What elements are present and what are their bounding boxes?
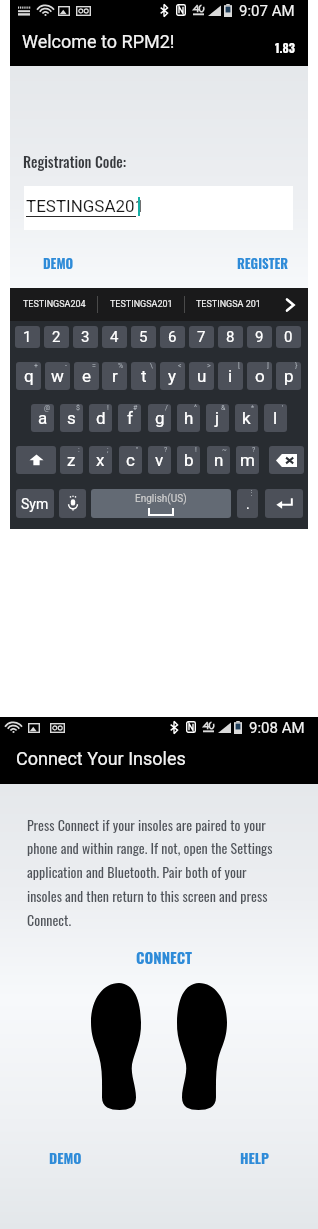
button[interactable]: .	[237, 489, 258, 518]
staticText: q	[24, 366, 34, 386]
staticText: ^	[194, 404, 197, 412]
button[interactable]: 4	[102, 326, 127, 348]
button[interactable]: Sym	[16, 489, 54, 518]
staticText: 2	[52, 328, 61, 346]
button[interactable]: o	[247, 362, 272, 390]
button[interactable]: v	[148, 446, 171, 474]
button[interactable]: 3	[73, 326, 98, 348]
button[interactable]: y	[160, 362, 185, 390]
staticText: c	[126, 450, 135, 470]
button[interactable]: p	[276, 362, 301, 390]
button[interactable]: Enter	[265, 489, 303, 518]
staticText: >	[207, 362, 211, 370]
staticText: =	[92, 362, 96, 370]
button[interactable]: 2	[44, 326, 69, 348]
staticText: "	[136, 446, 139, 454]
button[interactable]: x	[89, 446, 112, 474]
button[interactable]: e	[74, 362, 99, 390]
staticText: Connect Your Insoles	[16, 748, 186, 769]
button[interactable]: t	[131, 362, 156, 390]
button[interactable]: HELP	[236, 1143, 273, 1172]
button[interactable]: 7	[189, 326, 214, 348]
staticText: i	[228, 366, 233, 386]
button[interactable]: w	[45, 362, 70, 390]
button[interactable]: q	[16, 362, 41, 390]
staticText: }	[295, 362, 298, 370]
staticText: Sym	[21, 496, 49, 512]
button[interactable]: TESTINGSA201	[98, 288, 185, 321]
staticText: r	[112, 366, 118, 386]
button[interactable]: r	[102, 362, 127, 390]
staticText: w	[51, 366, 64, 386]
staticText: %	[118, 362, 124, 370]
staticText: ?	[164, 446, 168, 454]
button[interactable]: Backspace	[269, 446, 304, 474]
staticText: '	[282, 404, 284, 412]
button[interactable]: i	[218, 362, 243, 390]
staticText: +	[34, 362, 38, 370]
button[interactable]: 8	[218, 326, 243, 348]
staticText: TESTINGSA201	[26, 196, 145, 216]
staticText: Registration Code:	[23, 151, 127, 172]
button[interactable]: h	[177, 404, 200, 432]
button[interactable]: c	[119, 446, 142, 474]
button[interactable]: 5	[131, 326, 156, 348]
button[interactable]: f	[118, 404, 141, 432]
staticText: TESTINGSA 201	[196, 299, 261, 310]
staticText: CONNECT	[136, 946, 192, 968]
staticText: &	[221, 404, 226, 412]
staticText: n	[214, 450, 224, 470]
button[interactable]: 9	[247, 326, 272, 348]
button[interactable]: m	[236, 446, 259, 474]
button[interactable]: TESTINGSA 201	[185, 288, 272, 321]
button[interactable]: a	[31, 404, 54, 432]
staticText: 8	[226, 328, 235, 346]
staticText: v	[155, 450, 164, 470]
button[interactable]: s	[60, 404, 83, 432]
staticText: HELP	[240, 1147, 269, 1168]
button[interactable]: REGISTER	[233, 249, 293, 276]
staticText: DEMO	[49, 1147, 82, 1168]
button[interactable]: CONNECT	[132, 942, 196, 972]
staticText: REGISTER	[237, 253, 289, 272]
staticText: -	[65, 362, 67, 370]
staticText: DEMO	[43, 253, 74, 272]
staticText: ]	[267, 362, 269, 370]
staticText: English(US)	[135, 493, 187, 505]
button[interactable]: 1	[15, 326, 40, 348]
button[interactable]: l	[264, 404, 287, 432]
staticText: p	[284, 366, 294, 386]
button[interactable]: g	[148, 404, 171, 432]
staticText: a	[38, 408, 48, 428]
button[interactable]: j	[206, 404, 229, 432]
staticText: z	[67, 450, 76, 470]
staticText: j	[215, 408, 220, 428]
button[interactable]: Shift	[16, 446, 56, 474]
button[interactable]: u	[189, 362, 214, 390]
button[interactable]: n	[207, 446, 230, 474]
staticText: <	[178, 362, 182, 370]
button[interactable]: z	[60, 446, 83, 474]
staticText: s	[67, 408, 76, 428]
staticText: TESTINGSA201	[110, 299, 173, 310]
button[interactable]: d	[89, 404, 112, 432]
staticText: *	[251, 404, 255, 412]
button[interactable]: TESTINGSA201	[24, 186, 293, 230]
button[interactable]: 0	[276, 326, 301, 348]
staticText: @	[44, 404, 51, 412]
button[interactable]: 6	[160, 326, 185, 348]
staticText: t	[141, 366, 147, 386]
button[interactable]: Space	[91, 489, 231, 518]
button[interactable]: DEMO	[39, 249, 78, 276]
staticText: o	[255, 366, 265, 386]
staticText: k	[242, 408, 251, 428]
staticText: 9	[255, 328, 264, 346]
button[interactable]: k	[235, 404, 258, 432]
button[interactable]: Voice input	[59, 489, 86, 518]
button[interactable]: TESTINGSA204	[10, 288, 98, 321]
button[interactable]: More suggestions	[272, 288, 308, 321]
staticText: 1.83	[275, 39, 295, 57]
button[interactable]: DEMO	[45, 1143, 86, 1172]
staticText: \	[150, 362, 153, 370]
button[interactable]: b	[177, 446, 200, 474]
